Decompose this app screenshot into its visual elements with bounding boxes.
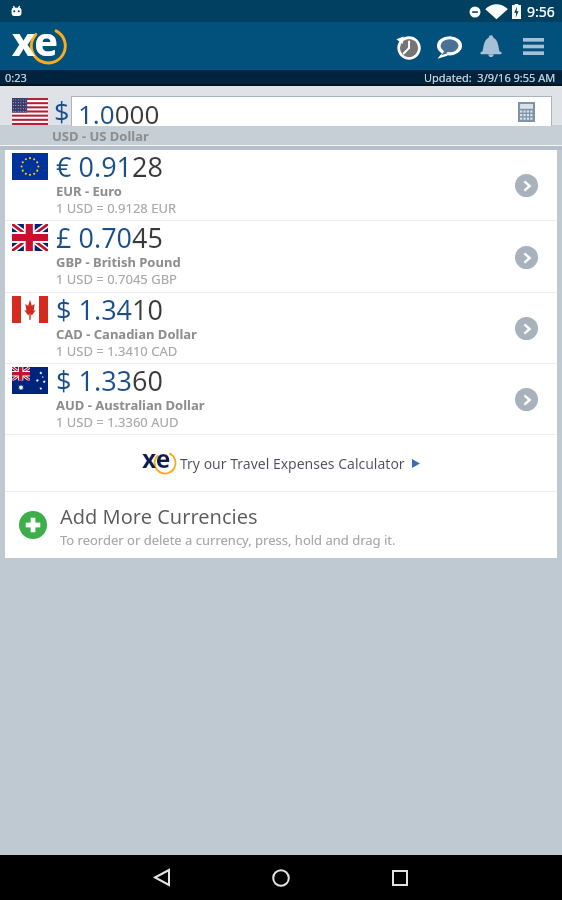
button[interactable]: Rate alerts <box>470 24 512 69</box>
staticText: $ 1.3410 <box>56 291 163 328</box>
button[interactable]: € 0.9128 <box>5 150 557 221</box>
staticText: $ <box>54 93 70 130</box>
staticText: GBP - British Pound <box>56 253 181 271</box>
button[interactable]: xe <box>5 435 557 492</box>
staticText: 1.0000 <box>78 96 160 125</box>
button[interactable]: Menu <box>512 24 554 69</box>
button[interactable]: Chat <box>428 24 470 69</box>
button[interactable]: Recents <box>376 855 424 900</box>
button[interactable]: Back <box>138 855 186 900</box>
staticText: 9:56 <box>527 2 555 21</box>
staticText: xe <box>12 13 58 61</box>
button[interactable]: Add More Currencies <box>5 492 557 558</box>
button[interactable]: Rate history <box>388 24 428 69</box>
button[interactable]: $ 1.3410 <box>5 293 557 364</box>
staticText: 1 USD = 1.3360 AUD <box>56 413 179 429</box>
button[interactable]: $ <box>0 86 562 145</box>
button[interactable]: $ 1.3360 <box>5 364 557 435</box>
staticText: $ 1.3360 <box>56 362 163 399</box>
other: Calculator <box>518 102 535 122</box>
staticText: £ 0.7045 <box>56 219 163 256</box>
staticText: EUR - Euro <box>56 182 122 200</box>
staticText: CAD - Canadian Dollar <box>56 325 197 343</box>
button[interactable]: £ 0.7045 <box>5 221 557 293</box>
staticText: Updated: 3/9/16 9:55 AM <box>424 70 556 84</box>
staticText: 1 USD = 1.3410 CAD <box>56 342 178 358</box>
button[interactable]: Home <box>257 855 305 900</box>
staticText: € 0.9128 <box>56 148 163 185</box>
staticText: 1 USD = 0.9128 EUR <box>56 199 177 215</box>
staticText: AUD - Australian Dollar <box>56 396 205 414</box>
staticText: To reorder or delete a currency, press, … <box>60 531 396 549</box>
staticText: Try our Travel Expenses Calculator <box>180 454 405 473</box>
staticText: xe <box>142 442 171 475</box>
staticText: 0:23 <box>5 70 27 84</box>
staticText: 1 USD = 0.7045 GBP <box>56 270 177 287</box>
staticText: Add More Currencies <box>60 503 258 530</box>
staticText: USD - US Dollar <box>52 127 149 145</box>
